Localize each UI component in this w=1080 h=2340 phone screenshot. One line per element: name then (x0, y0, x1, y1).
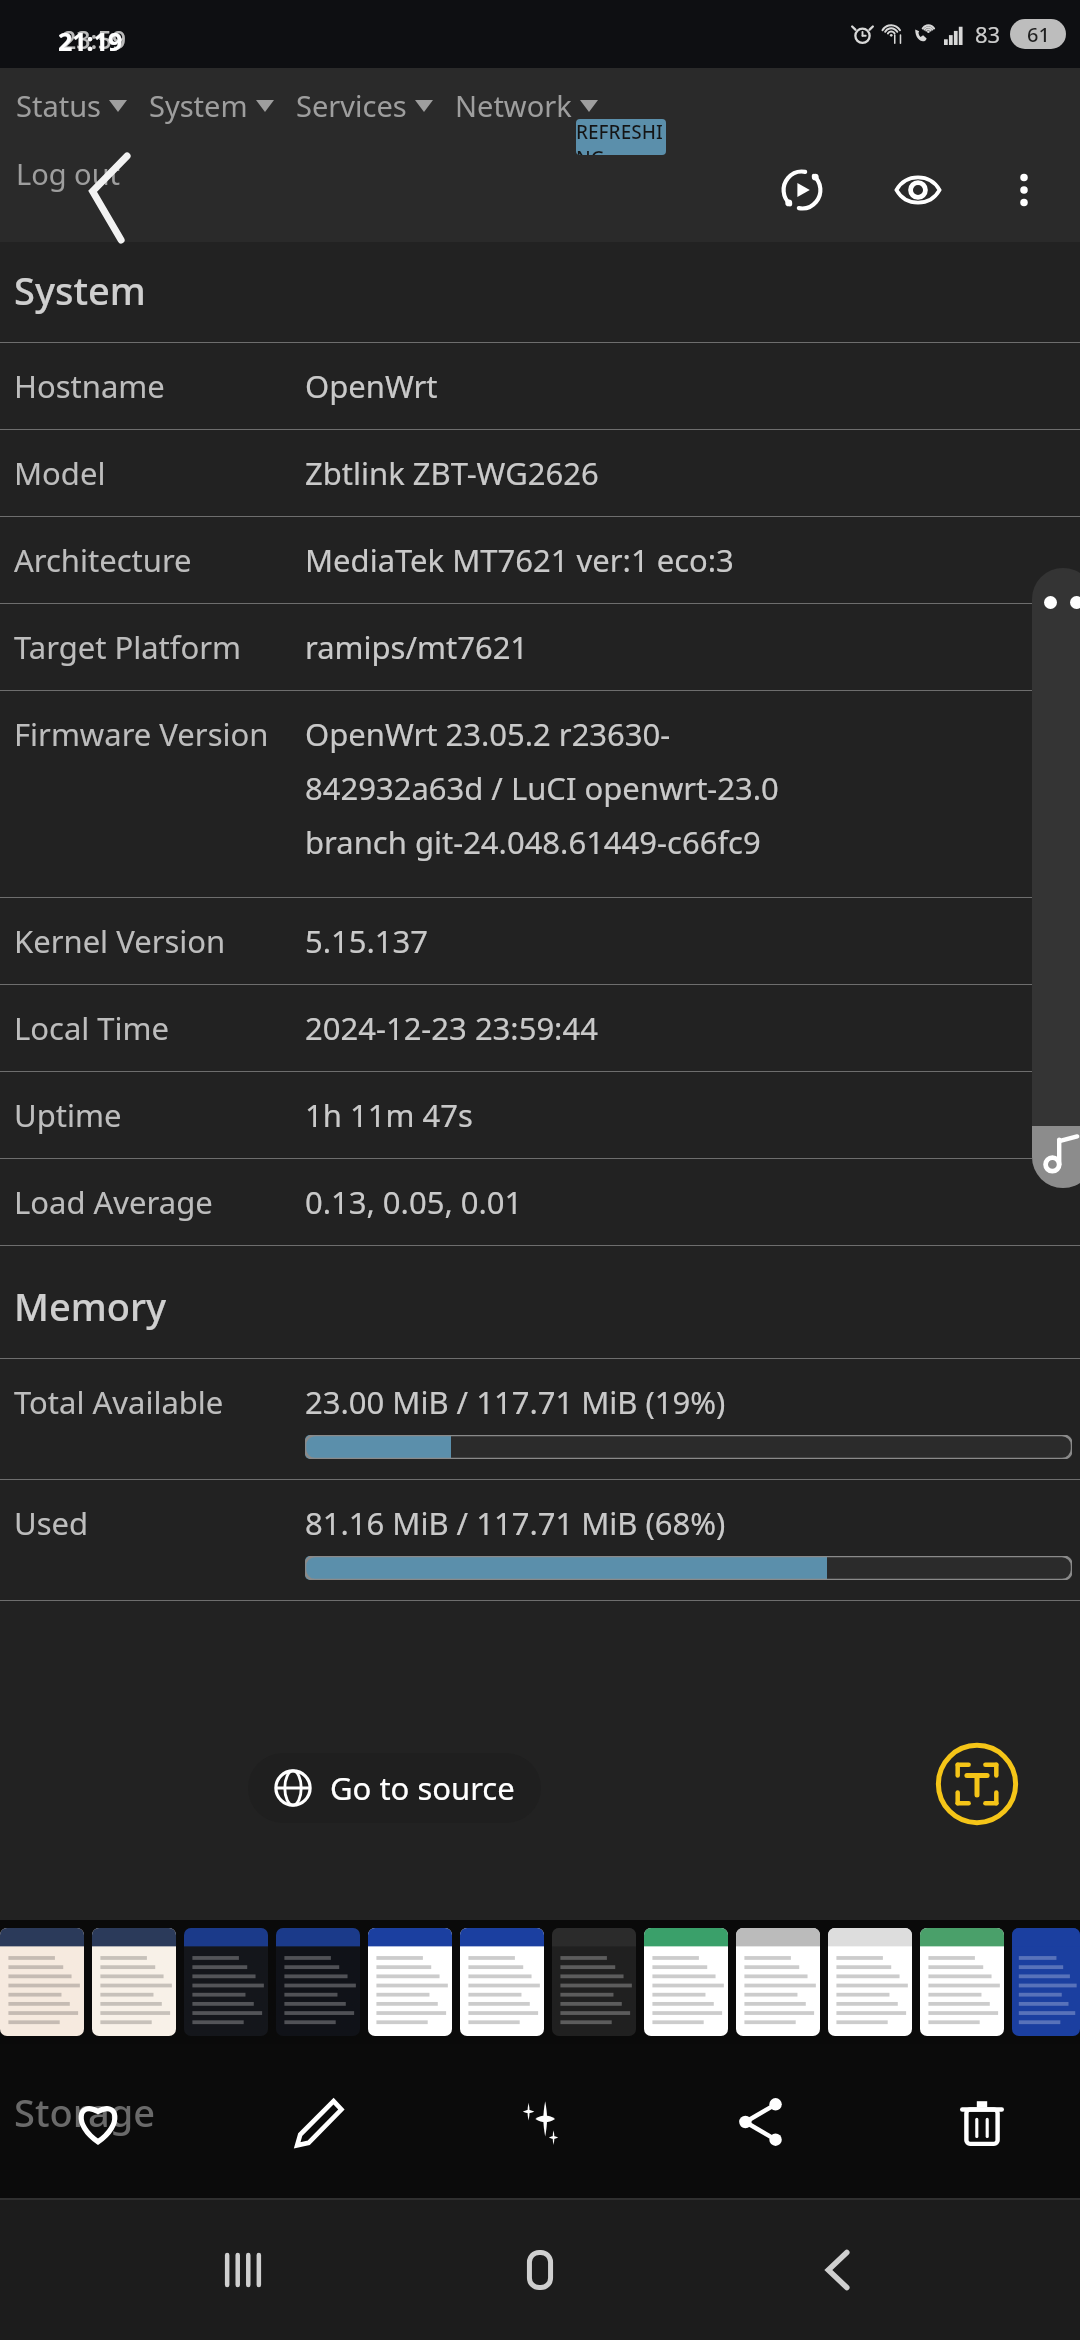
button[interactable]: Favorite (50, 2074, 146, 2170)
staticText: ramips/mt7621 (305, 626, 529, 668)
staticText: Storage (14, 2086, 156, 2138)
staticText: 23.00 MiB / 117.71 MiB (19%) (305, 1381, 726, 1423)
button[interactable]: Back (783, 2215, 893, 2325)
button[interactable]: Go to source (248, 1753, 541, 1823)
button[interactable]: Edit (271, 2074, 367, 2170)
staticText: 81.16 MiB / 117.71 MiB (68%) (305, 1502, 726, 1544)
button[interactable]: Delete (934, 2074, 1030, 2170)
button[interactable]: Share (713, 2074, 809, 2170)
button[interactable]: Firmware Version (0, 691, 1080, 897)
staticText: 5.15.137 (305, 920, 429, 962)
button[interactable]: Status (14, 80, 147, 131)
staticText: Services (296, 86, 407, 125)
button[interactable]: Select text (935, 1742, 1019, 1826)
button[interactable]: Architecture (0, 517, 1080, 603)
staticText: Used (14, 1502, 89, 1544)
staticText: Architecture (14, 539, 192, 581)
staticText: Kernel Version (14, 920, 226, 962)
button[interactable]: Screenshot 4 (276, 1928, 360, 2036)
staticText: Total Available (14, 1381, 224, 1423)
staticText: Local Time (14, 1007, 170, 1049)
button[interactable]: Target Platform (0, 604, 1080, 690)
staticText: 842932a63d / LuCI openwrt-23.0 (305, 767, 779, 809)
staticText: Hostname (14, 365, 165, 407)
staticText: Model (14, 452, 106, 494)
button[interactable]: Network (453, 80, 618, 131)
button[interactable]: Recents (188, 2215, 298, 2325)
button[interactable]: Screenshot 9 (736, 1928, 820, 2036)
staticText: Uptime (14, 1094, 122, 1136)
button[interactable]: Used (0, 1480, 1080, 1600)
button[interactable]: Screenshot 3 (184, 1928, 268, 2036)
button[interactable]: Screenshot 12 (1012, 1928, 1080, 2036)
button[interactable]: System (147, 80, 294, 131)
button[interactable]: Screenshot 2 (92, 1928, 176, 2036)
staticText: Memory (14, 1280, 167, 1332)
staticText: OpenWrt (305, 365, 438, 407)
button[interactable]: Screenshot 10 (828, 1928, 912, 2036)
staticText: branch git-24.048.61449-c66fc9 (305, 821, 761, 863)
staticText: Firmware Version (14, 713, 269, 755)
staticText: Go to source (330, 1767, 515, 1809)
button[interactable]: Kernel Version (0, 898, 1080, 984)
button[interactable]: Screenshot 7 (552, 1928, 636, 2036)
staticText: Zbtlink ZBT-WG2626 (305, 452, 599, 494)
staticText: 0.13, 0.05, 0.01 (305, 1181, 523, 1223)
button[interactable]: Screenshot 1 (0, 1928, 84, 2036)
button[interactable]: View (882, 154, 954, 226)
staticText: System (14, 264, 146, 316)
button[interactable]: Log out (12, 150, 125, 197)
staticText: Network (455, 86, 572, 125)
staticText: Load Average (14, 1181, 213, 1223)
button[interactable]: Auto refresh (766, 154, 838, 226)
button[interactable]: Screenshot 6 (460, 1928, 544, 2036)
button[interactable]: Enhance (492, 2074, 588, 2170)
button[interactable]: More options (988, 154, 1060, 226)
button[interactable]: REFRESHING (576, 119, 666, 155)
button[interactable]: Screenshot 5 (368, 1928, 452, 2036)
staticText: 2024-12-23 23:59:44 (305, 1007, 598, 1049)
button[interactable]: Screenshot 11 (920, 1928, 1004, 2036)
button[interactable]: Uptime (0, 1072, 1080, 1158)
button[interactable]: Services (294, 80, 453, 131)
button[interactable]: Home (485, 2215, 595, 2325)
staticText: Status (16, 86, 101, 125)
staticText: REFRESHING (576, 119, 666, 155)
staticText: OpenWrt 23.05.2 r23630- (305, 713, 671, 755)
staticText: 21:19 (58, 24, 123, 58)
button[interactable]: Floating panel (1032, 568, 1080, 1188)
staticText: Log out (16, 154, 121, 193)
staticText: System (149, 86, 248, 125)
button[interactable]: Load Average (0, 1159, 1080, 1245)
staticText: MediaTek MT7621 ver:1 eco:3 (305, 539, 734, 581)
button[interactable]: Hostname (0, 343, 1080, 429)
button[interactable]: Local Time (0, 985, 1080, 1071)
staticText: 61 (1027, 21, 1050, 48)
staticText: 23:59 (62, 22, 127, 56)
staticText: 83 (975, 19, 1001, 49)
button[interactable]: Model (0, 430, 1080, 516)
staticText: Target Platform (14, 626, 241, 668)
button[interactable]: Total Available (0, 1359, 1080, 1479)
button[interactable]: Screenshot 8 (644, 1928, 728, 2036)
staticText: 1h 11m 47s (305, 1094, 473, 1136)
